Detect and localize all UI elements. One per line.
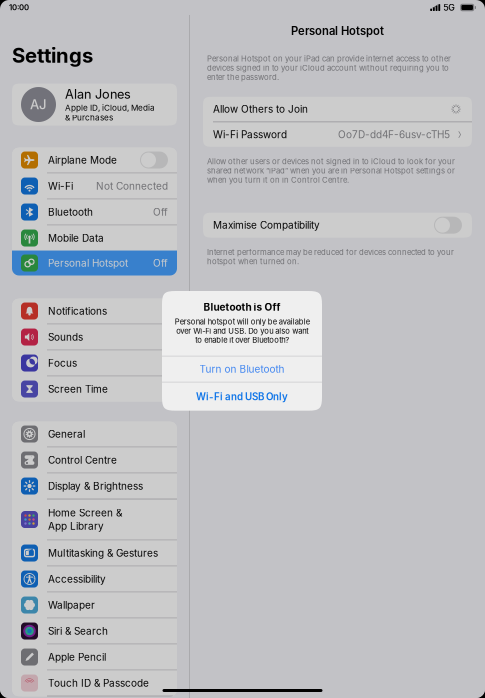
- staticText: General: [48, 428, 85, 440]
- button[interactable]: Airplane Mode: [12, 147, 177, 172]
- staticText: Bluetooth: [48, 206, 93, 218]
- staticText: Focus: [48, 357, 77, 369]
- staticText: Allow other users or devices not signed …: [207, 157, 455, 185]
- button[interactable]: Home Screen &: [12, 499, 177, 539]
- staticText: Maximise Compatibility: [213, 219, 320, 231]
- staticText: AJ: [30, 97, 47, 112]
- staticText: Personal hotspot will only be available …: [174, 317, 309, 345]
- staticText: Apple Pencil: [48, 651, 106, 663]
- staticText: Wi-Fi: [48, 180, 73, 192]
- button[interactable]: Turn on Bluetooth: [162, 357, 322, 382]
- button[interactable]: Wi-Fi and USB Only: [162, 383, 322, 411]
- staticText: Siri & Search: [48, 625, 108, 637]
- button[interactable]: Control Centre: [12, 447, 177, 472]
- staticText: & Purchases: [65, 113, 113, 122]
- staticText: Personal Hotspot: [291, 24, 384, 38]
- staticText: Home Screen &: [48, 507, 122, 519]
- staticText: Control Centre: [48, 454, 117, 466]
- staticText: Personal Hotspot: [48, 257, 128, 269]
- staticText: Airplane Mode: [48, 154, 117, 166]
- staticText: Off: [153, 206, 168, 218]
- staticText: Wi-Fi and USB Only: [196, 391, 288, 403]
- button[interactable]: Screen Time: [12, 376, 177, 401]
- button[interactable]: AJ: [12, 83, 177, 125]
- staticText: 10:00: [9, 3, 29, 12]
- staticText: Bluetooth is Off: [203, 301, 280, 313]
- button[interactable]: Touch ID & Passcode: [12, 670, 177, 695]
- staticText: Multitasking & Gestures: [48, 547, 158, 559]
- button[interactable]: Sounds: [12, 324, 177, 349]
- staticText: App Library: [48, 520, 104, 532]
- button[interactable]: Wi-Fi: [12, 173, 177, 198]
- button[interactable]: Display & Brightness: [12, 473, 177, 498]
- button[interactable]: Accessibility: [12, 566, 177, 591]
- button[interactable]: General: [12, 421, 177, 446]
- button[interactable]: Wallpaper: [12, 592, 177, 617]
- button[interactable]: Bluetooth: [12, 199, 177, 224]
- staticText: Mobile Data: [48, 232, 104, 244]
- button[interactable]: Notifications: [12, 298, 177, 323]
- staticText: Sounds: [48, 331, 83, 343]
- staticText: Settings: [12, 43, 93, 67]
- staticText: Alan Jones: [65, 86, 131, 102]
- staticText: Wallpaper: [48, 599, 95, 611]
- staticText: Not Connected: [96, 180, 168, 192]
- staticText: 5G: [443, 2, 455, 13]
- staticText: Allow Others to Join: [213, 103, 308, 115]
- staticText: Off: [153, 257, 168, 269]
- staticText: Personal Hotspot on your iPad can provid…: [207, 54, 451, 82]
- button[interactable]: Mobile Data: [12, 225, 177, 250]
- staticText: Internet performance may be reduced for …: [207, 248, 454, 266]
- button[interactable]: Multitasking & Gestures: [12, 540, 177, 565]
- staticText: Wi-Fi Password: [213, 128, 287, 141]
- button[interactable]: Siri & Search: [12, 618, 177, 643]
- staticText: Notifications: [48, 305, 107, 317]
- staticText: Screen Time: [48, 383, 108, 395]
- staticText: Turn on Bluetooth: [199, 363, 284, 375]
- staticText: Display & Brightness: [48, 480, 143, 492]
- staticText: Oo7D-dd4F-6usv-cTH5: [338, 128, 450, 141]
- button[interactable]: Focus: [12, 350, 177, 375]
- staticText: Touch ID & Passcode: [48, 677, 149, 689]
- button[interactable]: Personal Hotspot: [12, 250, 177, 275]
- staticText: Apple ID, iCloud, Media: [65, 103, 155, 113]
- staticText: Accessibility: [48, 573, 106, 585]
- button[interactable]: Apple Pencil: [12, 644, 177, 669]
